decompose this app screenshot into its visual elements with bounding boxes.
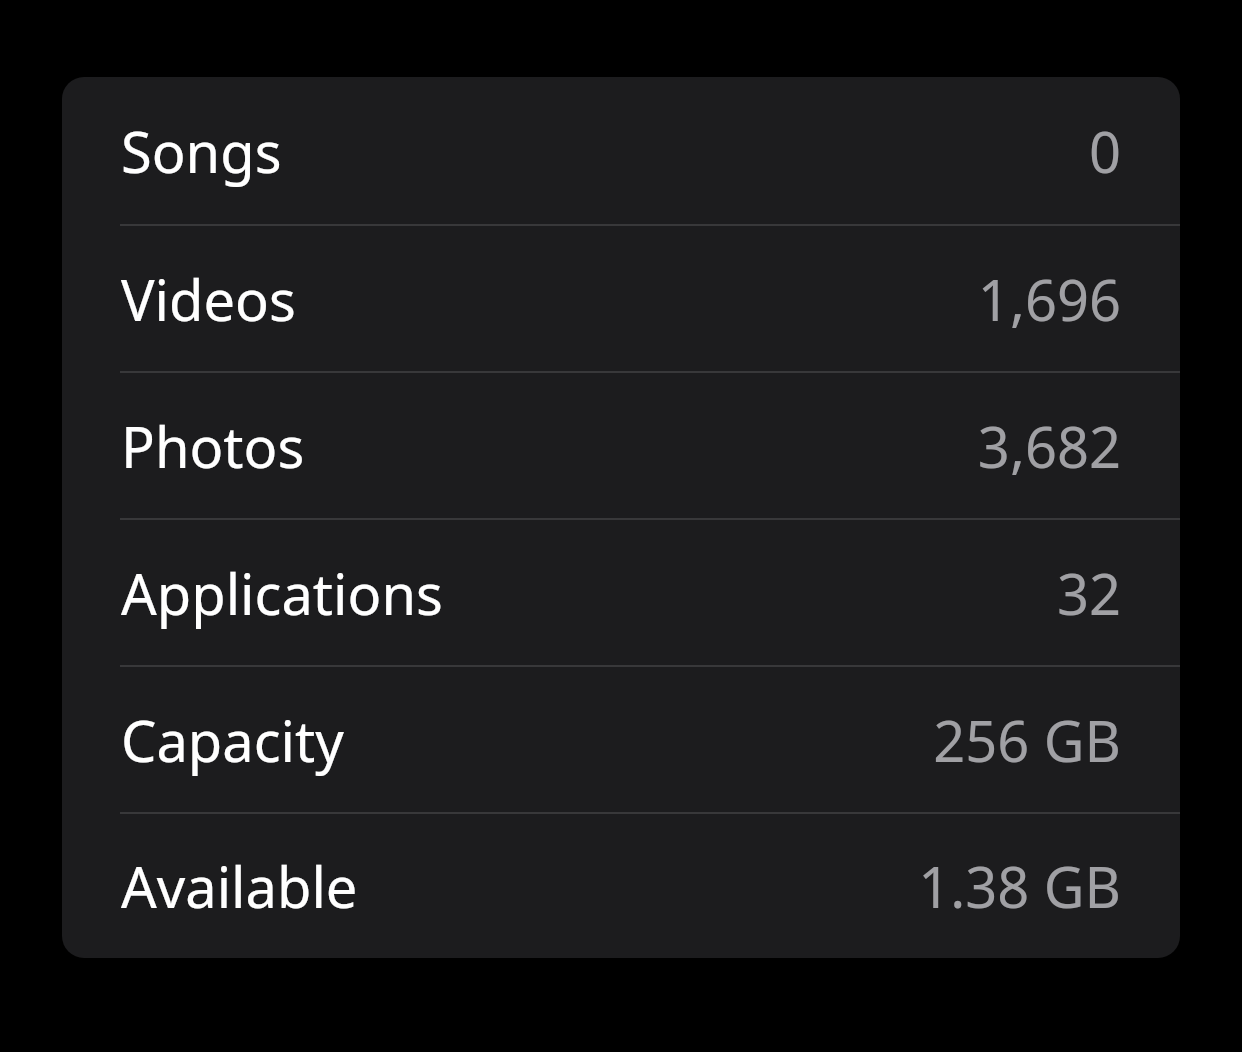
staticText: Applications [121,555,443,631]
button[interactable]: Photos [62,373,1180,518]
staticText: Photos [121,408,305,484]
staticText: 1,696 [977,261,1121,337]
staticText: 1.38 GB [918,848,1121,924]
staticText: 3,682 [977,408,1121,484]
staticText: 0 [1088,113,1121,189]
button[interactable]: Available [62,814,1180,958]
button[interactable]: Songs [62,77,1180,224]
staticText: Available [121,848,358,924]
staticText: Capacity [121,702,344,778]
button[interactable]: Videos [62,226,1180,371]
button[interactable]: Capacity [62,667,1180,812]
staticText: Songs [121,113,282,189]
staticText: Videos [121,261,296,337]
staticText: 32 [1056,555,1121,631]
staticText: 256 GB [933,702,1121,778]
button[interactable]: Applications [62,520,1180,665]
